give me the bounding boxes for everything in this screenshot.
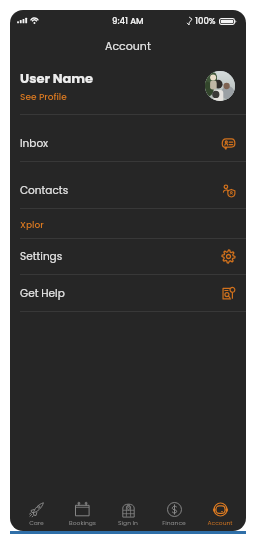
staticText: Care	[29, 519, 44, 527]
staticText: Sign In	[118, 519, 138, 527]
staticText: Contacts	[20, 183, 222, 198]
staticText: Settings	[20, 249, 222, 264]
button[interactable]: User Name	[10, 58, 246, 114]
staticText: Get Help	[20, 286, 222, 301]
button[interactable]: Get Help	[10, 275, 246, 311]
button[interactable]: Inbox	[10, 115, 246, 161]
button[interactable]: Settings	[10, 239, 246, 274]
staticText: Account	[105, 38, 151, 53]
button[interactable]: Sign In	[105, 491, 151, 531]
staticText: See Profile	[20, 91, 67, 104]
button[interactable]: Account	[197, 491, 243, 531]
button[interactable]: Care	[13, 491, 59, 531]
staticText: Account	[207, 519, 233, 527]
staticText: User Name	[20, 69, 94, 87]
staticText: Bookings	[69, 519, 96, 527]
button[interactable]: Finance	[151, 491, 197, 531]
button[interactable]: Bookings	[59, 491, 105, 531]
staticText: 9:41 AM	[112, 15, 144, 27]
staticText: 100%	[195, 15, 216, 27]
staticText: Finance	[162, 519, 186, 527]
staticText: Inbox	[20, 136, 222, 151]
staticText: Xplor	[20, 219, 44, 232]
button[interactable]: Contacts	[10, 162, 246, 208]
